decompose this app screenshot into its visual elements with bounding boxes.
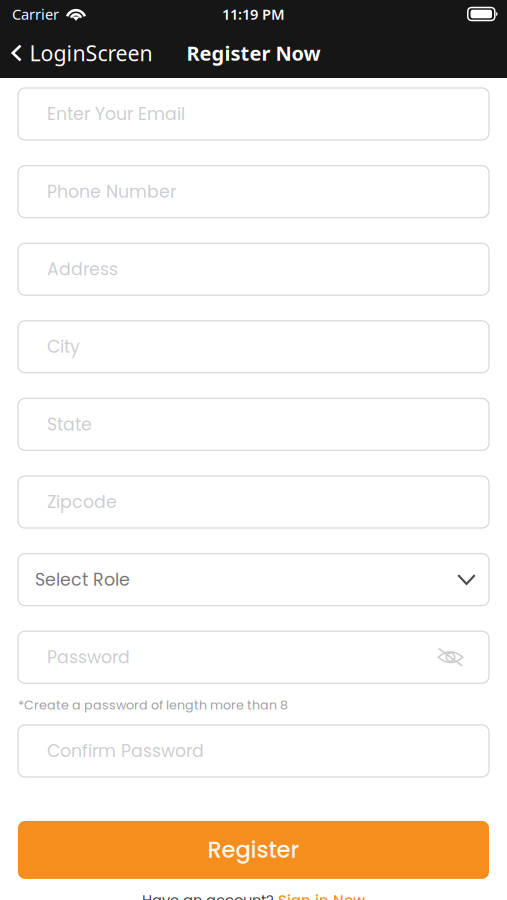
staticText: Password bbox=[47, 645, 130, 669]
staticText: State bbox=[47, 412, 92, 437]
staticText: *Create a password of length more than 8 bbox=[18, 696, 288, 714]
staticText: Carrier bbox=[12, 4, 59, 24]
staticText: Confirm Password bbox=[47, 739, 204, 763]
staticText: 11:19 PM bbox=[222, 4, 285, 24]
staticText: Sign in Now bbox=[278, 890, 365, 900]
button[interactable]: Show password bbox=[437, 647, 464, 667]
staticText: Address bbox=[47, 257, 118, 281]
staticText: Enter Your Email bbox=[47, 102, 185, 126]
button[interactable]: LoginScreen bbox=[0, 31, 162, 75]
staticText: Register Now bbox=[186, 40, 320, 66]
staticText: Phone Number bbox=[47, 179, 176, 204]
staticText: Zipcode bbox=[47, 490, 117, 514]
staticText: Have an account? bbox=[142, 890, 274, 900]
button[interactable]: Sign in Now bbox=[278, 890, 365, 900]
button[interactable]: Select Role bbox=[18, 554, 489, 606]
staticText: LoginScreen bbox=[29, 39, 152, 67]
staticText: Select Role bbox=[35, 567, 130, 592]
button[interactable]: Register bbox=[18, 821, 489, 879]
staticText: City bbox=[47, 335, 80, 359]
staticText: Register bbox=[207, 834, 299, 866]
